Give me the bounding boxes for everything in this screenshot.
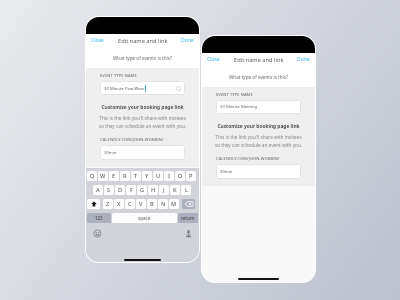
button[interactable]: return — [178, 213, 198, 223]
staticText: R — [123, 172, 127, 180]
button[interactable]: A — [93, 185, 103, 195]
button[interactable]: 30min — [216, 164, 301, 179]
button[interactable]: Backspace — [182, 199, 195, 209]
staticText: This is the link you'll share with invit… — [202, 134, 315, 140]
staticText: P — [189, 172, 193, 180]
button[interactable]: V — [136, 199, 146, 209]
staticText: Customize your booking page link — [202, 123, 315, 130]
staticText: Close — [91, 37, 104, 44]
button[interactable]: F — [126, 185, 136, 195]
button[interactable]: 30 Minute Pow Wow — [100, 81, 185, 95]
staticText: EVENT TYPE NAME — [100, 73, 137, 78]
staticText: Done — [181, 37, 194, 44]
staticText: U — [156, 172, 161, 180]
button[interactable]: T — [131, 171, 141, 181]
staticText: J — [163, 186, 165, 194]
staticText: so they can schedule an event with you. — [202, 142, 315, 148]
staticText: N — [161, 200, 166, 208]
button[interactable]: Done — [293, 54, 315, 65]
button[interactable]: 30 Minute Meeting — [216, 100, 301, 114]
button[interactable]: I — [164, 171, 174, 181]
button[interactable]: Z — [103, 199, 113, 209]
staticText: This is the link you'll share with invit… — [86, 115, 199, 121]
staticText: H — [151, 186, 156, 194]
staticText: A — [96, 186, 100, 194]
button[interactable]: N — [158, 199, 168, 209]
staticText: O — [178, 172, 183, 180]
staticText: B — [150, 200, 154, 208]
staticText: I — [168, 172, 170, 180]
button[interactable]: X — [114, 199, 124, 209]
staticText: M — [171, 200, 177, 208]
button[interactable]: Emoji — [93, 229, 102, 238]
button[interactable]: J — [159, 185, 169, 195]
staticText: Edit name and link — [118, 37, 168, 45]
button[interactable]: W — [98, 171, 108, 181]
staticText: 30min — [220, 169, 233, 175]
staticText: Z — [106, 200, 110, 208]
staticText: 30min — [104, 150, 117, 156]
staticText: 30 Minute Meeting — [220, 104, 258, 110]
staticText: so they can schedule an event with you. — [86, 123, 199, 129]
staticText: Y — [145, 172, 149, 180]
button[interactable]: 30min — [100, 145, 185, 160]
button[interactable]: 123 — [87, 213, 111, 223]
staticText: CALENDLY.COM/JOHN-WOBBIN/ — [100, 137, 164, 142]
button[interactable]: R — [120, 171, 130, 181]
button[interactable]: Y — [142, 171, 152, 181]
staticText: What type of events is this? — [86, 55, 199, 61]
staticText: 30 Minute Pow Wow — [104, 86, 144, 92]
button[interactable]: Close — [86, 35, 108, 46]
staticText: E — [112, 172, 116, 180]
staticText: L — [185, 186, 188, 194]
staticText: EVENT TYPE NAME — [216, 92, 253, 97]
button[interactable]: O — [175, 171, 185, 181]
button[interactable]: U — [153, 171, 163, 181]
button[interactable]: P — [186, 171, 196, 181]
staticText: Done — [297, 56, 310, 63]
button[interactable]: space — [112, 213, 177, 223]
button[interactable]: Dictation — [184, 229, 193, 238]
button[interactable]: B — [147, 199, 157, 209]
button[interactable]: Shift — [87, 199, 100, 209]
staticText: T — [134, 172, 138, 180]
staticText: S — [107, 186, 111, 194]
staticText: X — [117, 200, 121, 208]
button[interactable]: L — [181, 185, 191, 195]
staticText: G — [140, 186, 145, 194]
button[interactable]: M — [169, 199, 179, 209]
staticText: return — [181, 215, 195, 221]
button[interactable]: Close — [202, 54, 224, 65]
staticText: space — [138, 215, 151, 221]
button[interactable]: S — [104, 185, 114, 195]
staticText: W — [100, 172, 106, 180]
button[interactable]: Q — [87, 171, 97, 181]
staticText: D — [118, 186, 123, 194]
button[interactable]: K — [170, 185, 180, 195]
staticText: 123 — [95, 215, 103, 221]
button[interactable]: C — [125, 199, 135, 209]
staticText: What type of events is this? — [202, 74, 315, 80]
button[interactable]: E — [109, 171, 119, 181]
staticText: C — [128, 200, 132, 208]
staticText: K — [173, 186, 177, 194]
button[interactable]: G — [137, 185, 147, 195]
staticText: V — [139, 200, 143, 208]
staticText: Close — [207, 56, 220, 63]
staticText: F — [130, 186, 133, 194]
button[interactable]: H — [148, 185, 158, 195]
button[interactable]: D — [115, 185, 125, 195]
staticText: Edit name and link — [234, 56, 284, 64]
staticText: CALENDLY.COM/JOHN-WOBBIN/ — [216, 156, 280, 161]
staticText: Q — [90, 172, 95, 180]
staticText: Customize your booking page link — [86, 104, 199, 111]
button[interactable]: Done — [177, 35, 199, 46]
